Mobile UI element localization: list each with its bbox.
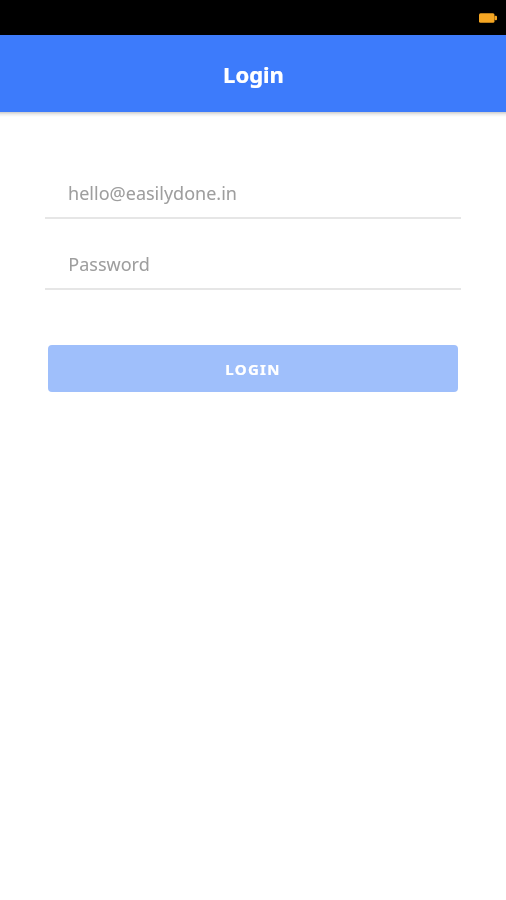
staticText: Password [68, 252, 150, 277]
button[interactable]: LOGIN [48, 345, 458, 392]
staticText: LOGIN [225, 359, 281, 379]
staticText: Login [223, 59, 284, 89]
button[interactable]: Password [45, 241, 461, 290]
staticText: hello@easilydone.in [68, 181, 237, 206]
other: Battery [479, 12, 497, 24]
button[interactable]: hello@easilydone.in [45, 170, 461, 219]
